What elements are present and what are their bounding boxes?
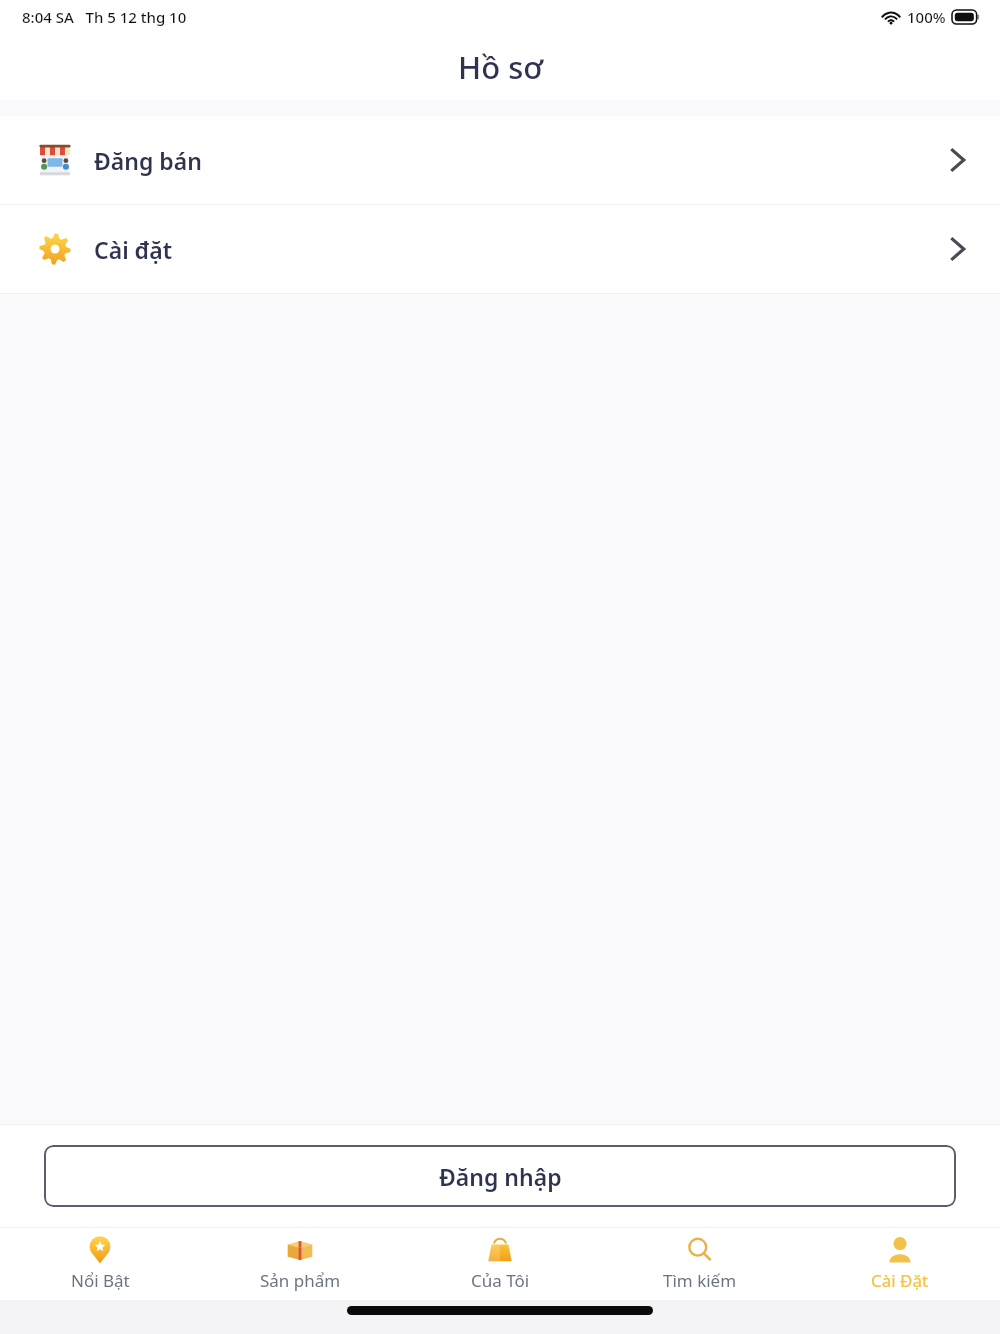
other: Của Tôi — [486, 1236, 514, 1264]
button[interactable]: Đăng bán — [0, 116, 1000, 204]
other: Tìm kiếm — [686, 1236, 714, 1264]
staticText: Đăng nhập — [439, 1161, 562, 1192]
staticText: Cài đặt — [94, 234, 172, 265]
other: Sản phẩm — [286, 1236, 314, 1264]
button[interactable]: Sản phẩm — [200, 1228, 400, 1300]
staticText: 100% — [907, 7, 946, 27]
button[interactable]: Của Tôi — [400, 1228, 600, 1300]
staticText: Đăng bán — [94, 145, 202, 176]
staticText: Cài Đặt — [871, 1269, 929, 1292]
button[interactable]: Cài Đặt — [800, 1228, 1000, 1300]
staticText: 8:04 SA Th 5 12 thg 10 — [22, 7, 187, 27]
staticText: Hồ sơ — [458, 46, 543, 88]
staticText: Nổi Bật — [71, 1269, 130, 1292]
staticText: Của Tôi — [471, 1269, 530, 1292]
button[interactable]: Tìm kiếm — [600, 1228, 800, 1300]
button[interactable]: Cài đặt — [0, 205, 1000, 293]
other: Nổi Bật — [86, 1236, 114, 1264]
button[interactable]: Đăng nhập — [44, 1145, 956, 1207]
staticText: Sản phẩm — [260, 1269, 341, 1292]
other: Cài Đặt — [886, 1236, 914, 1264]
staticText: Tìm kiếm — [663, 1269, 737, 1292]
button[interactable]: Nổi Bật — [0, 1228, 200, 1300]
